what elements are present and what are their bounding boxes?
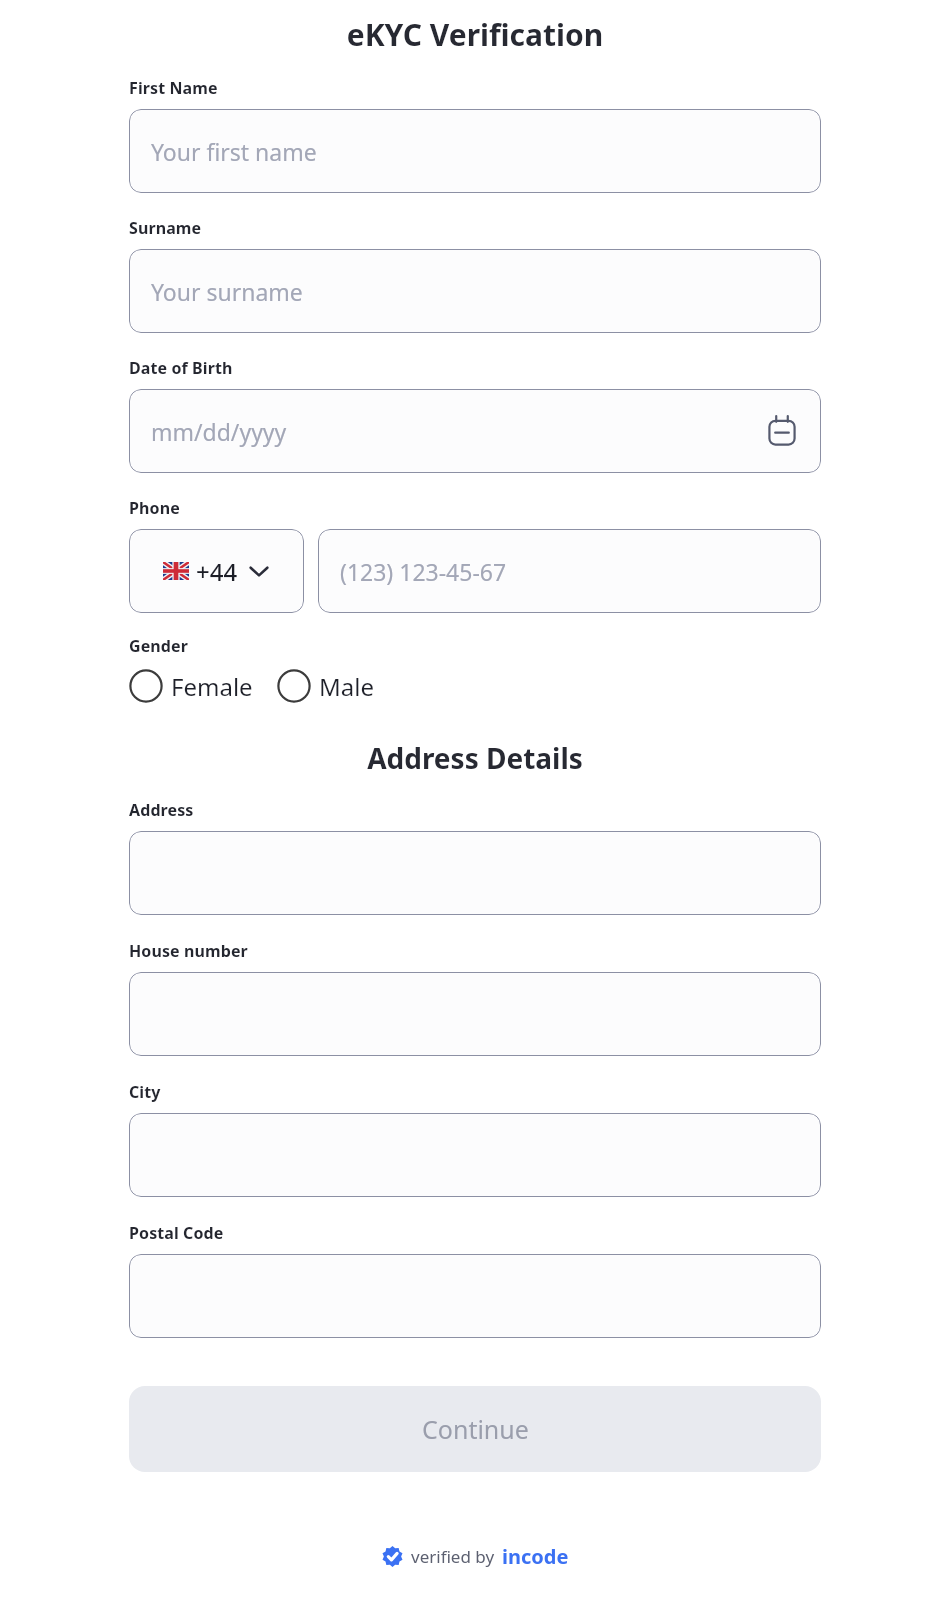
button[interactable]: mm/dd/yyyy (129, 389, 821, 473)
staticText: Gender (129, 635, 188, 657)
staticText: Phone (129, 497, 180, 519)
button[interactable] (129, 831, 821, 915)
staticText: Postal Code (129, 1222, 224, 1244)
staticText: Surname (129, 217, 202, 239)
staticText: Your surname (151, 276, 303, 307)
staticText: mm/dd/yyyy (151, 416, 287, 447)
staticText: Address Details (129, 739, 821, 777)
staticText: Female (171, 670, 253, 703)
staticText: Male (319, 670, 374, 703)
button[interactable]: Your surname (129, 249, 821, 333)
staticText: verified by (411, 1545, 495, 1568)
staticText: incode (502, 1543, 569, 1570)
button[interactable]: +44 (129, 529, 304, 613)
staticText: eKYC Verification (0, 14, 950, 55)
button[interactable]: Male (277, 669, 374, 703)
button[interactable] (129, 1254, 821, 1338)
staticText: House number (129, 940, 248, 962)
button[interactable]: (123) 123-45-67 (318, 529, 821, 613)
button[interactable] (129, 1113, 821, 1197)
button[interactable] (129, 972, 821, 1056)
staticText: Continue (422, 1412, 529, 1446)
button[interactable]: Continue (129, 1386, 821, 1472)
staticText: City (129, 1081, 161, 1103)
button[interactable]: Open date picker (765, 414, 799, 448)
staticText: Address (129, 799, 194, 821)
staticText: Your first name (151, 136, 317, 167)
button[interactable]: Female (129, 669, 253, 703)
staticText: Date of Birth (129, 357, 233, 379)
button[interactable]: Your first name (129, 109, 821, 193)
staticText: First Name (129, 77, 218, 99)
staticText: (123) 123-45-67 (340, 556, 507, 587)
staticText: +44 (196, 555, 238, 588)
